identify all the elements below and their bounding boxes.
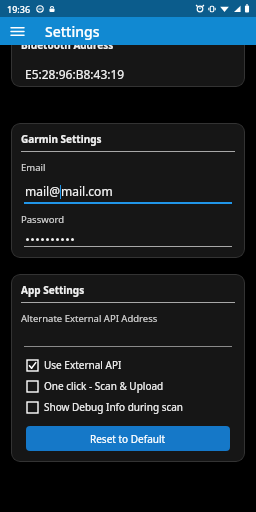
staticText: Bluetooth Address <box>21 45 114 52</box>
staticText: Email <box>21 161 46 174</box>
button[interactable] <box>21 238 235 247</box>
staticText: Password <box>21 213 64 226</box>
staticText: Reset to Default <box>90 432 166 446</box>
button[interactable]: One click - Scan & Upload <box>27 379 235 393</box>
staticText: Use External API <box>44 358 122 372</box>
button[interactable]: mail@ <box>21 183 235 204</box>
button[interactable]: Use External API <box>27 358 235 372</box>
button[interactable]: Reset to Default <box>26 426 230 451</box>
button[interactable]: Open navigation menu <box>6 20 28 42</box>
staticText: Garmin Settings <box>21 132 102 146</box>
staticText: Show Debug Info during scan <box>44 400 184 414</box>
staticText: Alternate External API Address <box>21 312 158 325</box>
button[interactable]: Show Debug Info during scan <box>27 400 235 414</box>
staticText: E5:28:96:B8:43:19 <box>25 66 125 82</box>
staticText: App Settings <box>21 283 85 297</box>
staticText: mail@ <box>25 183 60 199</box>
staticText: One click - Scan & Upload <box>44 379 164 393</box>
staticText: Settings <box>45 22 100 41</box>
staticText: 19:36 <box>7 3 31 15</box>
staticText: mail.com <box>61 183 113 199</box>
